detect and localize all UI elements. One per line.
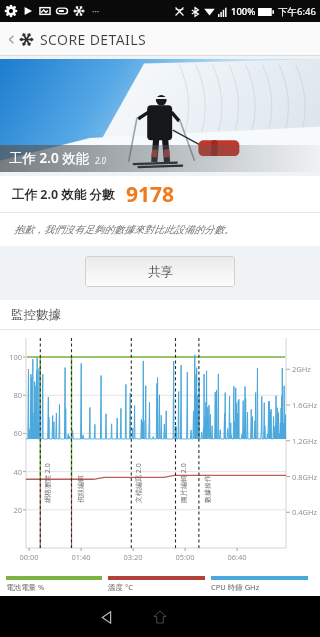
- staticText: 9178: [126, 180, 175, 209]
- staticText: 01:40: [66, 552, 96, 562]
- staticText: 網格瀏覽 2.0: [43, 463, 53, 503]
- staticText: 100: [4, 352, 22, 362]
- staticText: 0.8GHz: [292, 472, 318, 482]
- button[interactable]: Back: [90, 600, 124, 634]
- staticText: 下午6:46: [278, 5, 316, 18]
- staticText: 80: [4, 390, 22, 400]
- staticText: 共享: [148, 264, 173, 280]
- staticText: 20: [4, 505, 22, 515]
- staticText: 工作 2.0 效能 分數: [12, 186, 115, 203]
- staticText: 1.6GHz: [292, 400, 318, 410]
- staticText: 溫度 °C: [108, 582, 133, 592]
- staticText: 電池電量 %: [6, 582, 45, 592]
- staticText: 監控數據: [11, 307, 61, 323]
- staticText: CPU 時鐘 GHz: [211, 582, 260, 592]
- staticText: 03:20: [118, 552, 148, 562]
- staticText: 抱歉，我們沒有足夠的數據來對比此設備的分數。: [14, 223, 234, 236]
- staticText: 2GHz: [292, 364, 311, 374]
- button[interactable]: 共享: [85, 256, 235, 287]
- staticText: 圖片編輯 2.0: [179, 463, 189, 503]
- staticText: 100%: [231, 5, 256, 18]
- staticText: SCORE DETAILS: [40, 30, 147, 49]
- button[interactable]: Home: [143, 600, 177, 634]
- staticText: 60: [4, 428, 22, 438]
- staticText: 數據操作: [203, 475, 212, 503]
- staticText: 00:00: [14, 552, 44, 562]
- staticText: 1.2GHz: [292, 436, 318, 446]
- staticText: 0.4GHz: [292, 507, 318, 517]
- staticText: 05:00: [170, 552, 200, 562]
- staticText: 2.0: [95, 155, 106, 166]
- staticText: 視頻編輯: [76, 475, 85, 503]
- staticText: 文檔編寫 2.0: [134, 463, 144, 503]
- staticText: ···: [92, 5, 100, 17]
- staticText: 06:40: [222, 552, 252, 562]
- button[interactable]: Back to scores: [3, 25, 151, 54]
- staticText: 40: [4, 467, 22, 477]
- staticText: 工作 2.0 效能: [9, 149, 90, 167]
